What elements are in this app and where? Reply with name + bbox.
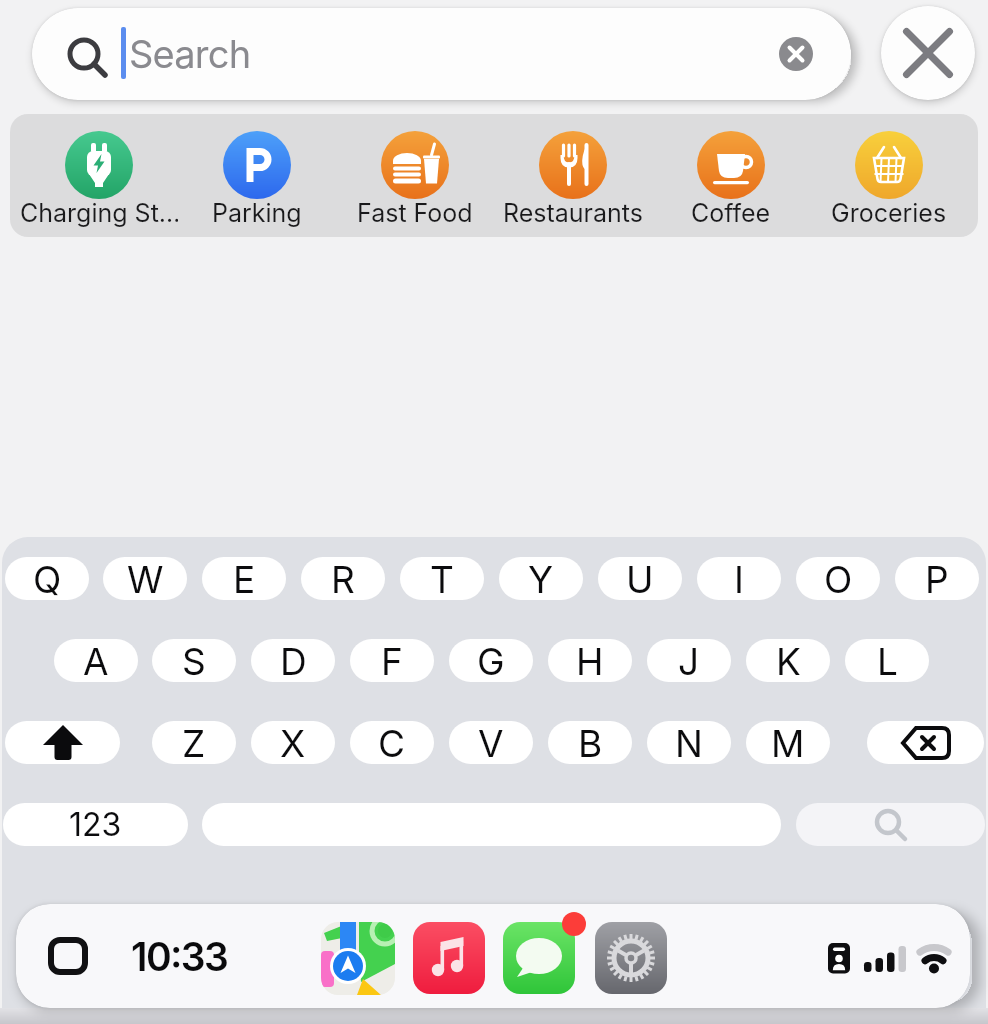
staticText: A	[83, 639, 109, 682]
button[interactable]: O	[796, 557, 880, 600]
button[interactable]: K	[746, 639, 830, 682]
button[interactable]: D	[251, 639, 335, 682]
staticText: F	[381, 639, 403, 682]
staticText: U	[626, 557, 654, 600]
staticText: I	[734, 557, 744, 600]
staticText: C	[378, 721, 406, 764]
button[interactable]	[5, 721, 120, 764]
button[interactable]	[32, 922, 104, 990]
staticText: O	[824, 557, 853, 600]
button[interactable]: V	[449, 721, 533, 764]
button[interactable]: C	[350, 721, 434, 764]
button[interactable]: X	[251, 721, 335, 764]
staticText: Charging St…	[20, 198, 178, 228]
staticText: T	[430, 557, 454, 600]
button[interactable]: Search	[32, 8, 851, 100]
staticText: L	[877, 639, 898, 682]
staticText: Restaurants	[503, 198, 643, 228]
staticText: V	[478, 721, 504, 764]
staticText: G	[477, 639, 505, 682]
button[interactable]: 123	[3, 803, 188, 846]
button[interactable]: Charging St…	[20, 122, 178, 232]
button[interactable]: L	[845, 639, 929, 682]
button[interactable]: A	[54, 639, 138, 682]
button[interactable]	[595, 922, 667, 994]
staticText: B	[578, 721, 603, 764]
button[interactable]: Y	[499, 557, 583, 600]
button[interactable]	[503, 922, 575, 994]
staticText: E	[233, 557, 256, 600]
staticText: N	[675, 721, 703, 764]
button[interactable]: S	[152, 639, 236, 682]
button[interactable]: G	[449, 639, 533, 682]
staticText: S	[182, 639, 206, 682]
staticText: R	[331, 557, 355, 600]
staticText: D	[280, 639, 307, 682]
button[interactable]: Z	[152, 721, 236, 764]
button[interactable]: U	[598, 557, 682, 600]
button[interactable]: Q	[5, 557, 89, 600]
button[interactable]	[779, 37, 813, 71]
staticText: P	[925, 557, 949, 600]
button[interactable]: W	[103, 557, 187, 600]
staticText: Coffee	[691, 198, 771, 228]
button[interactable]: E	[202, 557, 286, 600]
button[interactable]: P	[895, 557, 979, 600]
button[interactable]: Groceries	[810, 122, 968, 232]
button[interactable]: T	[400, 557, 484, 600]
button[interactable]: 10:33	[119, 922, 239, 990]
staticText: Groceries	[831, 198, 947, 228]
button[interactable]: M	[746, 721, 830, 764]
button[interactable]	[796, 803, 985, 846]
button[interactable]: Parking	[178, 122, 336, 232]
staticText: X	[280, 721, 306, 764]
button[interactable]: Coffee	[652, 122, 810, 232]
staticText: Q	[33, 557, 62, 600]
staticText: K	[776, 639, 801, 682]
staticText: Parking	[212, 198, 302, 228]
button[interactable]: F	[350, 639, 434, 682]
button[interactable]	[321, 922, 395, 995]
staticText: 10:33	[131, 933, 228, 980]
staticText: Search	[129, 31, 251, 77]
staticText: J	[678, 639, 700, 682]
button[interactable]	[202, 803, 781, 846]
button[interactable]: R	[301, 557, 385, 600]
button[interactable]: Restaurants	[494, 122, 652, 232]
staticText: W	[127, 557, 164, 600]
staticText: Fast Food	[357, 198, 473, 228]
button[interactable]: J	[647, 639, 731, 682]
staticText: Y	[528, 557, 554, 600]
staticText: M	[771, 721, 805, 764]
button[interactable]: I	[697, 557, 781, 600]
button[interactable]	[881, 6, 975, 100]
button[interactable]: B	[548, 721, 632, 764]
button[interactable]: Fast Food	[336, 122, 494, 232]
button[interactable]: N	[647, 721, 731, 764]
button[interactable]: H	[548, 639, 632, 682]
staticText: 123	[69, 805, 122, 844]
staticText: H	[576, 639, 604, 682]
button[interactable]	[867, 721, 984, 764]
button[interactable]	[413, 922, 485, 994]
staticText: Z	[182, 721, 206, 764]
